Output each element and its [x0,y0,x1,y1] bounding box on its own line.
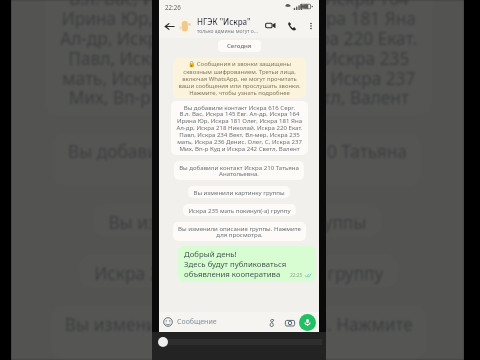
button[interactable]: Attach [266,317,277,328]
button[interactable]: Вы добавили контакт Искра 210 Татьяна Ан… [53,133,421,186]
button[interactable]: Group photo [177,18,193,34]
button[interactable]: Emoji [162,316,174,328]
staticText: Вы добавили контакт Искра 210 Татьяна Ан… [68,138,407,181]
button[interactable]: Искра 235 мать покинул(-а) группу [183,204,296,216]
staticText: Искра 235 мать покинул(-а) группу [188,206,291,214]
staticText: НГЭК "Искра" [197,16,251,27]
button[interactable]: Voice call [286,20,298,32]
staticText: 22:26 [165,3,181,11]
staticText: Добрый день! Здесь будут публиковаться о… [184,249,287,279]
staticText: Сообщение [177,317,266,327]
button[interactable]: Camera [284,317,295,328]
staticText: Вы добавили контакт Искра 616 Серг. В.л.… [176,103,303,153]
staticText: Вы добавили контакт Искра 210 Татьяна Ан… [179,163,299,178]
staticText: Вы изменили картинку группы [193,188,285,196]
button[interactable]: Вы добавили контакт Искра 210 Татьяна Ан… [174,161,304,180]
staticText: Сегодня [227,42,252,50]
button[interactable]: 🔒 Сообщения и звонки защищены сквозным ш… [173,58,306,98]
button[interactable]: Искра 235 мать покинул(-а) группу [79,254,399,288]
button[interactable]: Сегодня [218,40,261,52]
button[interactable]: Вы добавили контакт Искра 616 Серг. В.л.… [45,0,433,116]
button[interactable]: Добрый день! Здесь будут публиковаться о… [178,246,316,282]
staticText: Вы изменили описание группы. Нажмите для… [65,311,413,353]
staticText: Искра 235 мать покинул(-а) группу [93,260,385,283]
button[interactable]: Video call [263,18,278,33]
button[interactable]: More options [305,20,316,31]
button[interactable]: Вы изменили описание группы. Нажмите для… [51,305,427,359]
staticText: Вы изменили описание группы. Нажмите для… [178,224,301,239]
staticText: Вы изменили картинку группы [107,209,368,232]
button[interactable]: НГЭК "Искра" [197,16,263,35]
button[interactable]: Вы добавили контакт Искра 616 Серг. В.л.… [171,101,308,155]
staticText: Вы добавили контакт Искра 616 Серг. В.л.… [59,0,418,110]
button[interactable]: Voice message [299,314,316,331]
button[interactable]: Вы изменили описание группы. Нажмите для… [173,222,306,241]
button[interactable]: Вы изменили картинку группы [188,186,290,198]
staticText: 22:25 [290,272,303,279]
button[interactable]: Вы изменили картинку группы [93,203,382,237]
staticText: 🔒 Сообщения и звонки защищены сквозным ш… [178,60,301,96]
staticText: только админы могут о... [197,28,258,35]
button[interactable]: Back [162,19,176,33]
